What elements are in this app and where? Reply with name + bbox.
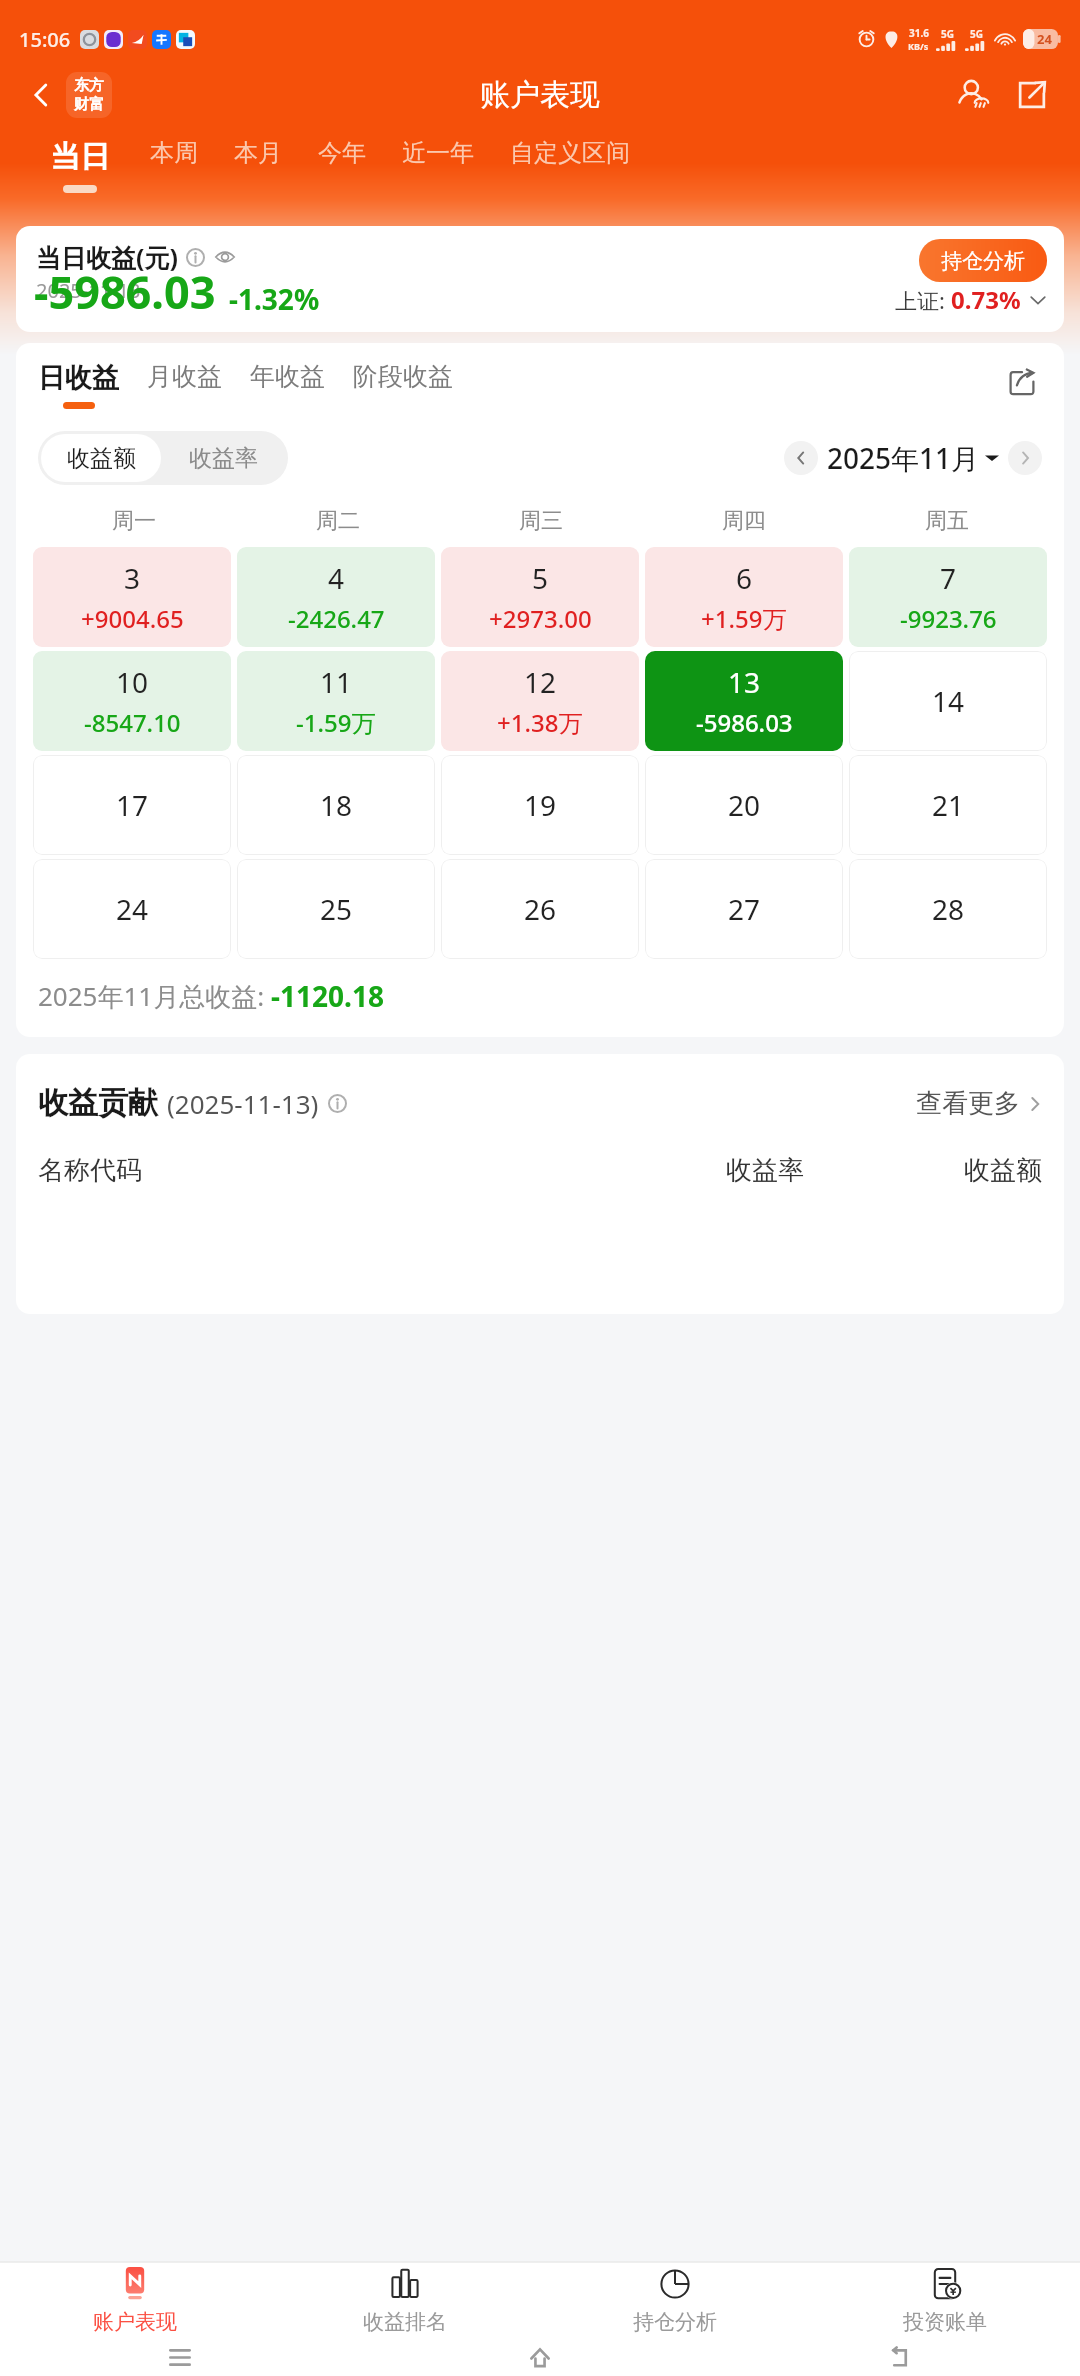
button[interactable]: 25 (237, 859, 435, 959)
button[interactable]: 24 (33, 859, 231, 959)
button[interactable]: 今年 (300, 138, 384, 168)
button[interactable]: 3 (33, 547, 231, 647)
button[interactable]: 收益排名 (270, 2262, 540, 2339)
staticText: (2025-11-13) (167, 1086, 319, 1121)
staticText: 24 (1037, 30, 1052, 48)
button[interactable]: 显示隐藏金额 (214, 246, 236, 268)
staticText: 12 (524, 663, 557, 701)
button[interactable]: 5 (441, 547, 639, 647)
button[interactable]: 2025年11月 (827, 439, 999, 477)
button[interactable]: 分享收益 (1000, 361, 1044, 405)
button[interactable]: 7 (849, 547, 1047, 647)
button[interactable]: 11 (237, 651, 435, 751)
staticText: 持仓分析 (941, 248, 1025, 274)
button[interactable]: 下个月 (1008, 441, 1042, 475)
button[interactable]: 查看更多 (916, 1087, 1044, 1120)
staticText: 20 (728, 786, 761, 824)
staticText: 31.6 (909, 26, 929, 40)
staticText: 13 (728, 663, 761, 701)
button[interactable]: 收益率 (161, 434, 285, 482)
button[interactable]: 自定义区间 (492, 138, 648, 168)
button[interactable]: 投资账单 (810, 2262, 1080, 2339)
button[interactable]: 本月 (216, 138, 300, 168)
staticText: -5986.03 (696, 706, 793, 739)
staticText: 财富 (74, 95, 104, 114)
staticText: 14 (932, 682, 965, 720)
button[interactable]: 返回 (720, 2339, 1080, 2376)
staticText: 日收益 (38, 361, 119, 395)
staticText: 27 (728, 890, 761, 928)
staticText: -1120.18 (271, 977, 384, 1015)
staticText: 17 (116, 786, 149, 824)
button[interactable]: 月收益 (147, 361, 222, 399)
button[interactable]: 日收益 (38, 361, 119, 409)
button[interactable]: 21 (849, 755, 1047, 855)
button[interactable]: 返回 (20, 66, 118, 124)
button[interactable]: 近一年 (384, 138, 492, 168)
staticText: 15:06 (19, 26, 71, 52)
button[interactable]: 13 (645, 651, 843, 751)
staticText: 7 (940, 559, 957, 597)
staticText: 4 (328, 559, 345, 597)
staticText: 5 (532, 559, 549, 597)
staticText: 收益贡献 (38, 1084, 158, 1122)
staticText: 10 (116, 663, 149, 701)
button[interactable]: 当日 (32, 138, 128, 193)
staticText: 周一 (112, 507, 156, 535)
button[interactable]: 持仓分析 (919, 239, 1047, 282)
staticText: 名称代码 (38, 1154, 142, 1187)
staticText: 2025-11-13 (36, 277, 141, 304)
staticText: 周三 (519, 507, 563, 535)
staticText: 5G (941, 27, 954, 41)
staticText: 年收益 (250, 361, 325, 392)
button[interactable]: 收益额 (41, 434, 161, 482)
staticText: 19 (524, 786, 557, 824)
staticText: -2426.47 (288, 602, 385, 635)
button[interactable]: 27 (645, 859, 843, 959)
staticText: 本月 (234, 138, 282, 168)
button[interactable]: 上证: (895, 283, 1048, 316)
staticText: +1.38万 (497, 706, 583, 739)
staticText: 3 (124, 559, 141, 597)
staticText: 查看更多 (916, 1087, 1020, 1120)
button[interactable]: 本周 (132, 138, 216, 168)
button[interactable]: 4 (237, 547, 435, 647)
button[interactable]: 当日收益(元) (16, 226, 1064, 332)
button[interactable]: 10 (33, 651, 231, 751)
button[interactable]: 19 (441, 755, 639, 855)
button[interactable]: 20 (645, 755, 843, 855)
staticText: -9923.76 (900, 602, 997, 635)
staticText: 周二 (316, 507, 360, 535)
button[interactable]: 阶段收益 (353, 361, 453, 399)
button[interactable]: 28 (849, 859, 1047, 959)
button[interactable]: 主页 (360, 2339, 720, 2376)
staticText: 28 (932, 890, 965, 928)
staticText: 当日收益(元) (36, 240, 178, 274)
button[interactable]: 12 (441, 651, 639, 751)
staticText: 持仓分析 (633, 2309, 717, 2335)
staticText: 2025年11月 (827, 439, 980, 477)
button[interactable]: 账户表现 (0, 2262, 270, 2339)
staticText: 5G (970, 27, 983, 41)
staticText: 收益额 (964, 1154, 1042, 1187)
staticText: 6 (736, 559, 753, 597)
button[interactable]: 年收益 (250, 361, 325, 399)
button[interactable]: 分享 (1006, 69, 1058, 121)
button[interactable]: 上个月 (784, 441, 818, 475)
button[interactable]: 17 (33, 755, 231, 855)
staticText: +1.59万 (701, 602, 787, 635)
staticText: 25 (320, 890, 353, 928)
staticText: 阶段收益 (353, 361, 453, 392)
button[interactable]: 最近任务 (0, 2339, 360, 2376)
button[interactable]: 18 (237, 755, 435, 855)
staticText: -5986.03 (34, 261, 216, 322)
button[interactable]: 6 (645, 547, 843, 647)
staticText: +2973.00 (489, 602, 592, 635)
button[interactable]: 持仓分析 (540, 2262, 810, 2339)
staticText: 今年 (318, 138, 366, 168)
button[interactable]: 14 (849, 651, 1047, 751)
button[interactable]: 账户 (948, 69, 1000, 121)
staticText: 18 (320, 786, 353, 824)
staticText: -1.59万 (296, 706, 376, 739)
button[interactable]: 26 (441, 859, 639, 959)
